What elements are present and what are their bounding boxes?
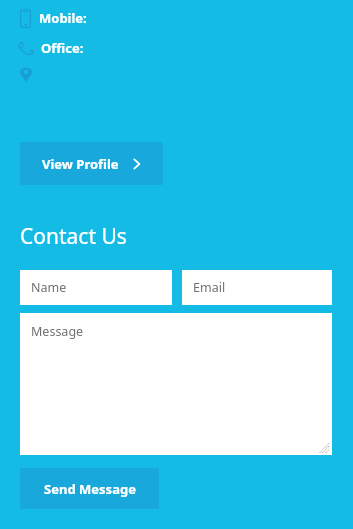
staticText: View Profile xyxy=(42,155,119,173)
staticText: Name xyxy=(31,279,67,296)
button[interactable]: Name xyxy=(20,270,172,305)
button[interactable]: Mobile: xyxy=(20,6,180,30)
staticText: Office: xyxy=(41,39,84,57)
staticText: Send Message xyxy=(44,480,136,498)
staticText: Mobile: xyxy=(39,9,87,27)
staticText: Contact Us xyxy=(20,222,127,251)
button[interactable]: View Profile xyxy=(20,142,163,185)
button[interactable]: Address location xyxy=(20,63,180,85)
staticText: Email xyxy=(193,279,226,296)
button[interactable]: Send Message xyxy=(20,468,159,509)
button[interactable]: Message xyxy=(20,313,332,455)
staticText: Message xyxy=(31,323,84,340)
button[interactable]: Email xyxy=(182,270,332,305)
button[interactable]: Office: xyxy=(18,36,178,60)
